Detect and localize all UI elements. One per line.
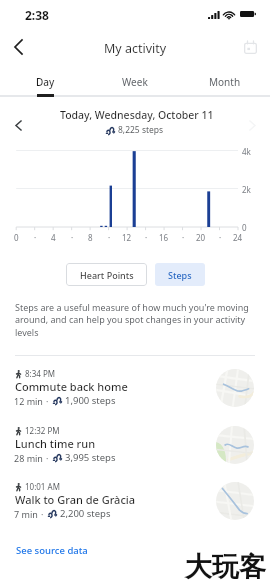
button[interactable]: Month	[180, 68, 270, 96]
staticText: 2,200 steps	[60, 507, 111, 520]
staticText: ·	[182, 232, 185, 243]
staticText: Steps are a useful measure of how much y…	[15, 301, 255, 339]
staticText: Today, Wednesday, October 11	[60, 108, 214, 122]
staticText: See source data	[16, 544, 88, 557]
button[interactable]: See source data	[10, 540, 94, 561]
button[interactable]: Calendar	[237, 34, 263, 60]
staticText: Day	[36, 75, 55, 89]
staticText: 12 min	[14, 395, 46, 407]
staticText: Heart Points	[80, 269, 134, 281]
staticText: Month	[209, 75, 241, 89]
staticText: ·	[71, 232, 74, 243]
staticText: 28 min	[14, 452, 46, 464]
staticText: 24	[233, 232, 243, 243]
staticText: Commute back home	[15, 379, 128, 394]
staticText: ·	[108, 232, 111, 243]
staticText: 0	[242, 222, 247, 233]
staticText: 12	[122, 232, 132, 243]
staticText: Steps	[168, 269, 192, 281]
button[interactable]: Steps	[155, 263, 205, 286]
staticText: 1,900 steps	[65, 394, 116, 407]
staticText: Week	[122, 75, 148, 89]
button[interactable]: 12:32 PM	[0, 424, 270, 478]
staticText: ·	[46, 395, 49, 407]
staticText: 8,225 steps	[118, 124, 164, 136]
staticText: 7 min	[14, 508, 41, 520]
button[interactable]: 10:01 AM	[0, 480, 270, 534]
staticText: 0	[14, 232, 19, 243]
staticText: 3,995 steps	[65, 451, 116, 464]
button[interactable]: Week	[90, 68, 180, 96]
button[interactable]: Previous day	[7, 114, 29, 136]
staticText: My activity	[104, 40, 167, 57]
staticText: Lunch time run	[15, 436, 96, 451]
staticText: ·	[46, 452, 49, 464]
staticText: 16	[159, 232, 169, 243]
staticText: 8:34 PM	[25, 368, 56, 379]
staticText: 8	[88, 232, 93, 243]
staticText: 12:32 PM	[25, 425, 60, 436]
staticText: 4k	[242, 146, 251, 157]
button[interactable]: Heart Points	[66, 263, 147, 286]
staticText: Walk to Gran de Gràcia	[15, 492, 136, 507]
button[interactable]: Back	[6, 33, 34, 61]
staticText: 20	[196, 232, 206, 243]
staticText: 4	[51, 232, 56, 243]
staticText: ·	[34, 232, 37, 243]
staticText: 2:38	[25, 7, 49, 23]
staticText: ·	[41, 508, 44, 520]
staticText: ·	[145, 232, 148, 243]
button[interactable]: 8:34 PM	[0, 367, 270, 421]
staticText: 10:01 AM	[25, 481, 60, 492]
button[interactable]: Day	[0, 68, 90, 96]
staticText: 2k	[242, 184, 251, 195]
staticText: ·	[219, 232, 222, 243]
staticText: 大玩客	[185, 550, 266, 584]
